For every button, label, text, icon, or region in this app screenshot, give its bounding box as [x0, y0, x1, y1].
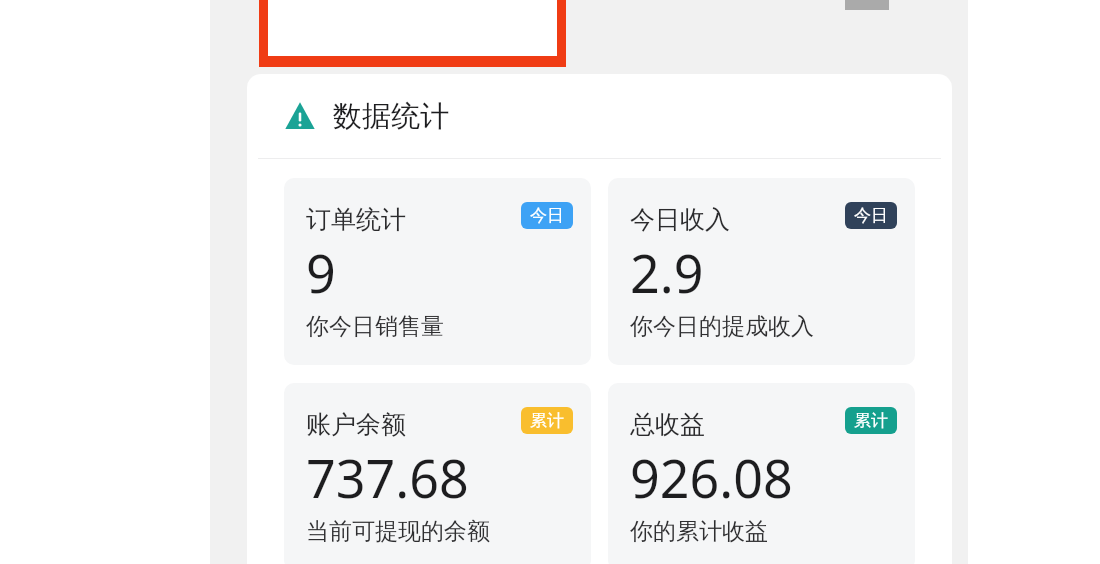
- staticText: 你的累计收益: [630, 517, 768, 546]
- staticText: 累计: [530, 410, 564, 431]
- button[interactable]: 今日: [521, 202, 573, 229]
- staticText: 账户余额: [306, 409, 406, 440]
- staticText: 累计: [854, 410, 888, 431]
- other: 数据统计: [285, 101, 315, 131]
- button[interactable]: 账户余额: [284, 383, 591, 564]
- staticText: 订单统计: [306, 204, 406, 235]
- staticText: 926.08: [630, 442, 793, 513]
- staticText: 你今日销售量: [306, 312, 444, 341]
- staticText: 737.68: [306, 442, 469, 513]
- staticText: 2.9: [630, 237, 704, 308]
- button[interactable]: 累计: [521, 407, 573, 434]
- staticText: 你今日的提成收入: [630, 312, 814, 341]
- staticText: 数据统计: [333, 98, 449, 135]
- button[interactable]: 总收益: [608, 383, 915, 564]
- staticText: 今日: [854, 205, 888, 226]
- button[interactable]: 今日收入: [608, 178, 915, 365]
- staticText: 今日收入: [630, 204, 730, 235]
- staticText: 9: [306, 237, 336, 308]
- staticText: 今日: [530, 205, 564, 226]
- staticText: 当前可提现的余额: [306, 517, 490, 546]
- button[interactable]: 数据统计: [247, 74, 952, 158]
- staticText: 总收益: [630, 409, 705, 440]
- button[interactable]: 累计: [845, 407, 897, 434]
- button[interactable]: 今日: [845, 202, 897, 229]
- button[interactable]: 订单统计: [284, 178, 591, 365]
